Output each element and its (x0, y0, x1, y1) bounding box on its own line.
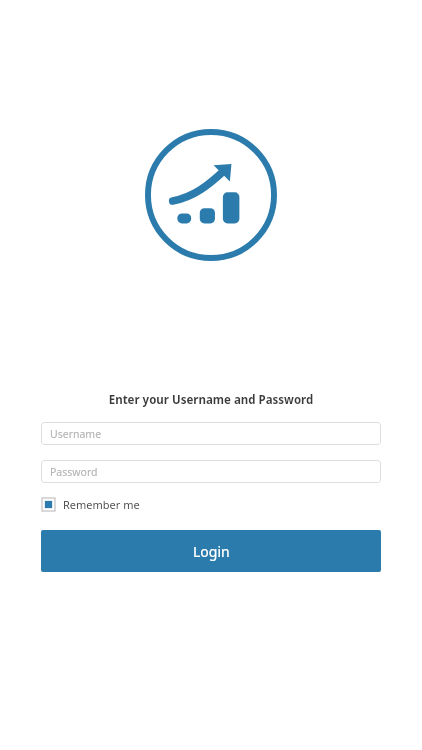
staticText: Remember me (63, 497, 140, 512)
button[interactable]: Password (41, 460, 381, 483)
staticText: Username (50, 427, 102, 441)
staticText: Login (193, 542, 230, 561)
button[interactable]: Remember me checkbox (41, 495, 141, 514)
button[interactable]: Login (41, 530, 381, 572)
staticText: Enter your Username and Password (0, 392, 422, 408)
button[interactable]: Username (41, 422, 381, 445)
staticText: Password (50, 465, 98, 479)
other: Remember me checkbox (42, 498, 55, 511)
